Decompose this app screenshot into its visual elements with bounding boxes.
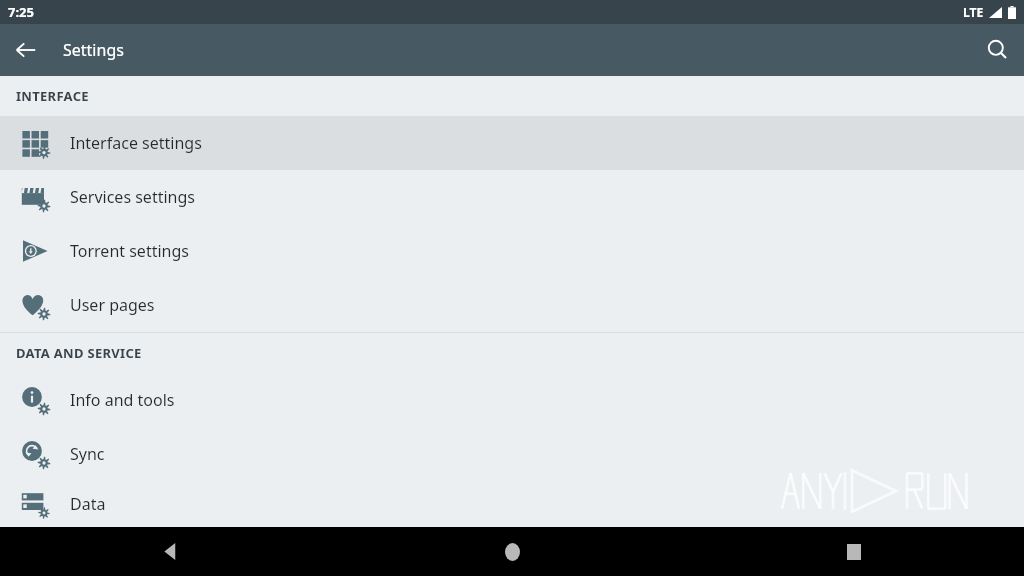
staticText: Services settings — [70, 186, 195, 208]
staticText: User pages — [70, 294, 155, 316]
staticText: Interface settings — [70, 132, 202, 154]
button[interactable]: User pages — [0, 278, 1024, 332]
staticText: LTE — [963, 4, 984, 20]
staticText: INTERFACE — [16, 87, 89, 105]
staticText: Data — [70, 493, 106, 515]
button[interactable]: Sync — [0, 427, 1024, 481]
button[interactable]: Interface settings — [0, 116, 1024, 170]
staticText: DATA AND SERVICE — [16, 344, 142, 362]
button[interactable]: Search — [972, 24, 1024, 76]
button[interactable]: Home — [342, 527, 683, 576]
button[interactable]: Back — [0, 527, 342, 576]
button[interactable]: Services settings — [0, 170, 1024, 224]
staticText: 7:25 — [8, 3, 34, 21]
staticText: Info and tools — [70, 389, 175, 411]
button[interactable]: Recent apps — [683, 527, 1024, 576]
button[interactable]: Torrent settings — [0, 224, 1024, 278]
button[interactable]: Info and tools — [0, 373, 1024, 427]
staticText: Sync — [70, 443, 105, 465]
staticText: Settings — [63, 39, 124, 61]
staticText: Torrent settings — [70, 240, 189, 262]
button[interactable]: Data — [0, 481, 1024, 527]
button[interactable]: Back — [0, 24, 52, 76]
